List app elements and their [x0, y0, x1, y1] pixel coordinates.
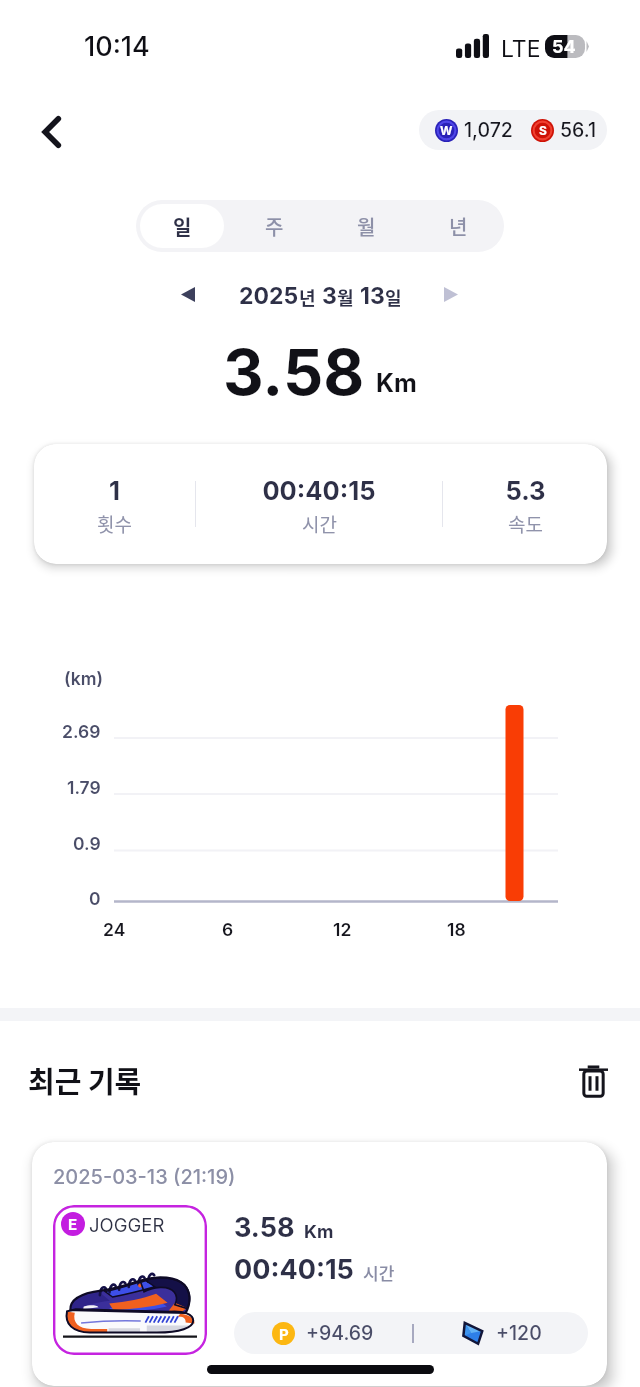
staticText: 00:40:15 [262, 475, 376, 506]
staticText: 년 [299, 284, 316, 310]
staticText: JOGGER [89, 1214, 165, 1236]
button[interactable]: E [53, 1205, 207, 1355]
staticText: 12 [333, 919, 352, 940]
button[interactable]: W [419, 110, 607, 150]
button[interactable]: 년 [416, 204, 500, 248]
staticText: 년 [449, 212, 468, 241]
staticText: 3.58 [234, 1211, 295, 1244]
button[interactable]: Next day [431, 274, 471, 314]
staticText: 10:14 [84, 30, 150, 63]
staticText: 월 [337, 284, 354, 310]
staticText: 주 [265, 212, 284, 241]
staticText: S [539, 123, 547, 138]
staticText: 최근 기록 [28, 1059, 142, 1101]
staticText: 0.9 [73, 833, 101, 854]
staticText: 2025-03-13 (21:19) [53, 1165, 236, 1189]
button[interactable]: 주 [232, 204, 316, 248]
button[interactable]: 월 [324, 204, 408, 248]
button[interactable]: Delete [571, 1058, 615, 1102]
staticText: P [279, 1325, 289, 1343]
staticText: 13 [360, 282, 385, 310]
button[interactable]: 2025-03-13 (21:19) [32, 1142, 607, 1386]
staticText: 1.79 [67, 777, 101, 798]
button[interactable]: 00:40:15 [196, 475, 442, 538]
staticText: 시간 [363, 1260, 395, 1285]
staticText: 3.58 [223, 334, 365, 410]
staticText: 24 [103, 919, 126, 940]
staticText: E [68, 1215, 78, 1233]
staticText: 시간 [302, 510, 337, 538]
staticText: 54 [552, 36, 576, 58]
button[interactable]: 1 [34, 475, 195, 538]
staticText: +120 [496, 1321, 542, 1345]
staticText: 일 [385, 284, 402, 310]
button[interactable]: P [234, 1312, 588, 1354]
staticText: W [440, 123, 453, 138]
staticText: 1 [109, 475, 120, 506]
staticText: 2.69 [62, 721, 101, 742]
staticText: 2025 [239, 282, 299, 310]
staticText: Km [376, 368, 417, 398]
staticText: LTE [501, 35, 541, 63]
staticText: 3 [322, 282, 337, 310]
staticText: 월 [357, 212, 376, 241]
staticText: 0 [89, 888, 101, 909]
staticText: (km) [64, 668, 103, 689]
staticText: 18 [447, 919, 466, 940]
staticText: 5.3 [505, 475, 546, 506]
button[interactable]: Back [26, 110, 70, 154]
staticText: Km [304, 1221, 334, 1243]
staticText: 횟수 [97, 510, 132, 538]
staticText: 일 [173, 212, 192, 241]
button[interactable]: 5.3 [443, 475, 607, 538]
staticText: 속도 [508, 510, 543, 538]
staticText: +94.69 [306, 1321, 374, 1345]
button[interactable]: 일 [140, 204, 224, 248]
staticText: 1,072 [464, 118, 513, 142]
staticText: 00:40:15 [234, 1253, 354, 1286]
staticText: 6 [222, 919, 234, 940]
button[interactable]: Previous day [168, 274, 208, 314]
staticText: 56.1 [560, 118, 597, 142]
